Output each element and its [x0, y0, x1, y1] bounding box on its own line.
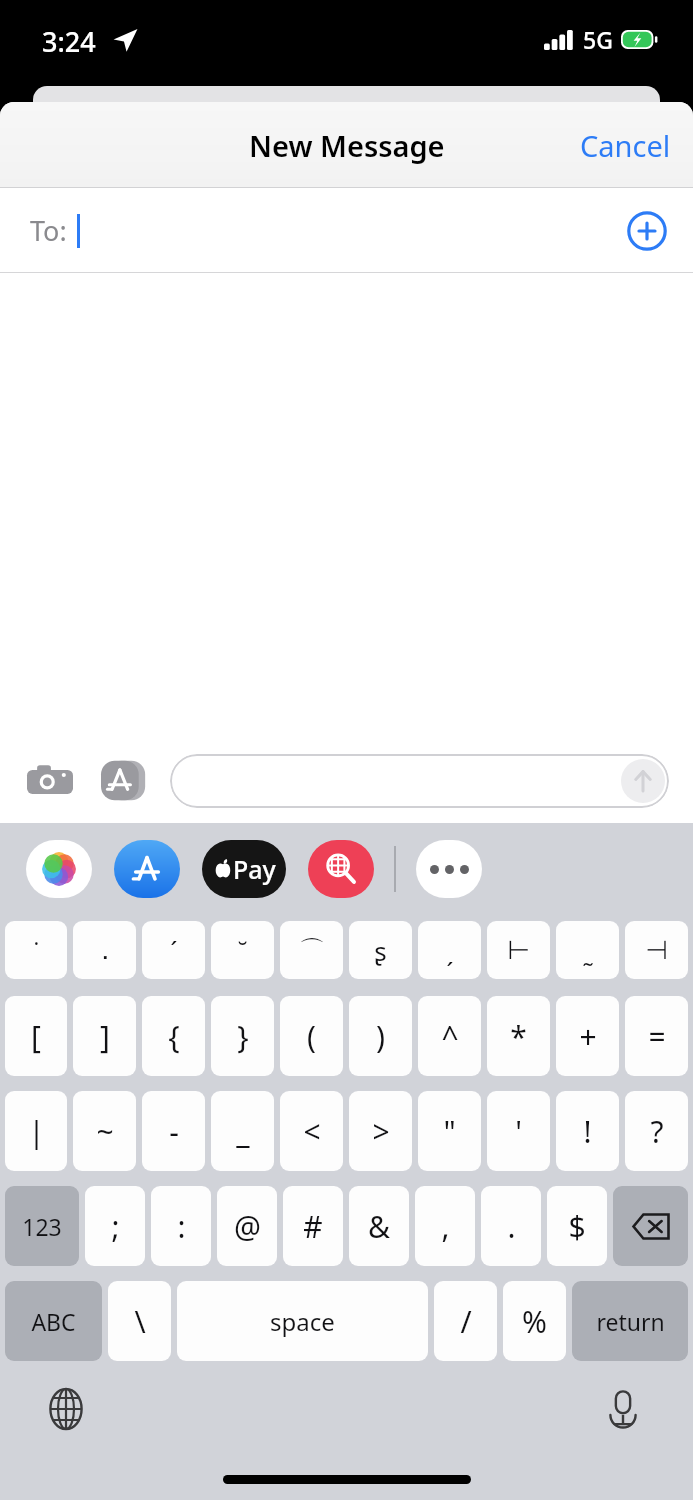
staticText: space [270, 1305, 335, 1338]
staticText: ABC [31, 1306, 76, 1337]
button[interactable]: [ [5, 996, 67, 1076]
button[interactable]: ; [85, 1186, 145, 1266]
button[interactable]: & [349, 1186, 409, 1266]
staticText: / [460, 1301, 472, 1342]
button[interactable]: Camera [24, 755, 76, 807]
button[interactable]: @ [217, 1186, 277, 1266]
staticText: ´ [170, 933, 178, 968]
button[interactable]: ' [487, 1091, 550, 1171]
staticText: ) [376, 1016, 385, 1057]
staticText: & [368, 1206, 390, 1247]
staticText: 5G [583, 24, 613, 55]
button[interactable]: ( [280, 996, 343, 1076]
staticText: \ [134, 1301, 146, 1342]
button[interactable]: Music search [308, 840, 374, 898]
button[interactable]: ． [73, 921, 136, 979]
button[interactable]: ⊣ [625, 921, 688, 979]
button[interactable]: = [625, 996, 688, 1076]
button[interactable]: $ [547, 1186, 607, 1266]
button[interactable]: Cancel [558, 116, 693, 175]
button[interactable]: . [481, 1186, 541, 1266]
staticText: ⊢ [507, 935, 530, 965]
button[interactable]: Change keyboard [40, 1383, 92, 1435]
button[interactable]: " [418, 1091, 481, 1171]
button[interactable]: ⊢ [487, 921, 550, 979]
button[interactable]: > [349, 1091, 412, 1171]
button[interactable]: ˘ [211, 921, 274, 979]
staticText: + [579, 1016, 597, 1057]
button[interactable]: ] [73, 996, 136, 1076]
button[interactable]: \ [108, 1281, 171, 1361]
button[interactable]: % [503, 1281, 566, 1361]
button[interactable]: ABC [5, 1281, 102, 1361]
button[interactable]: ⌒ [280, 921, 343, 979]
staticText: { [168, 1016, 180, 1057]
staticText: ． [92, 934, 118, 967]
staticText: > [372, 1111, 390, 1152]
button[interactable]: } [211, 996, 274, 1076]
staticText: } [237, 1016, 249, 1057]
button[interactable]: | [5, 1091, 67, 1171]
staticText: ? [650, 1111, 664, 1152]
staticText: [ [31, 1016, 41, 1057]
staticText: : [177, 1206, 186, 1247]
staticText: ˙ [34, 933, 39, 968]
button[interactable]: ˏ [418, 921, 481, 979]
staticText: ⊣ [645, 935, 668, 965]
staticText: * [510, 1016, 527, 1057]
button[interactable]: + [556, 996, 619, 1076]
staticText: ⌒ [299, 934, 325, 967]
staticText: ʂ [374, 933, 387, 968]
button[interactable]: More apps [416, 840, 482, 898]
staticText: Cancel [580, 126, 671, 165]
button[interactable]: : [151, 1186, 211, 1266]
button[interactable]: ~ [73, 1091, 136, 1171]
button[interactable]: ´ [142, 921, 205, 979]
staticText: - [169, 1111, 179, 1152]
button[interactable]: Apple Pay [202, 840, 286, 898]
staticText: $ [568, 1206, 586, 1247]
button[interactable]: < [280, 1091, 343, 1171]
button[interactable]: ʂ [349, 921, 412, 979]
button[interactable]: , [415, 1186, 475, 1266]
button[interactable]: Add contact [623, 207, 671, 255]
button[interactable]: ˙ [5, 921, 67, 979]
button[interactable]: App Store apps [98, 755, 150, 807]
staticText: < [303, 1111, 321, 1152]
button[interactable]: return [572, 1281, 688, 1361]
staticText: # [303, 1206, 323, 1247]
staticText: ˷ [582, 933, 594, 968]
staticText: To: [30, 212, 67, 249]
other: Send [621, 759, 665, 803]
button[interactable]: Photos [26, 840, 92, 898]
staticText: % [522, 1301, 547, 1342]
staticText: _ [236, 1111, 250, 1152]
button[interactable]: ) [349, 996, 412, 1076]
button[interactable]: # [283, 1186, 343, 1266]
button[interactable]: Send [170, 754, 669, 808]
button[interactable]: Dictation [597, 1383, 649, 1435]
button[interactable]: _ [211, 1091, 274, 1171]
button[interactable]: space [177, 1281, 428, 1361]
staticText: " [443, 1111, 456, 1152]
staticText: . [507, 1206, 516, 1247]
staticText: 3:24 [42, 23, 96, 60]
staticText: , [441, 1206, 450, 1247]
button[interactable]: App Store [114, 840, 180, 898]
button[interactable]: / [434, 1281, 497, 1361]
button[interactable]: ^ [418, 996, 481, 1076]
staticText: Pay [233, 852, 276, 886]
staticText: ] [100, 1016, 110, 1057]
button[interactable]: * [487, 996, 550, 1076]
button[interactable]: { [142, 996, 205, 1076]
staticText: | [28, 1111, 45, 1152]
staticText: 123 [22, 1211, 62, 1242]
button[interactable]: - [142, 1091, 205, 1171]
staticText: ~ [96, 1111, 114, 1152]
button[interactable]: ? [625, 1091, 688, 1171]
button[interactable]: 123 [5, 1186, 79, 1266]
button[interactable]: ! [556, 1091, 619, 1171]
button[interactable]: Delete [613, 1186, 688, 1266]
staticText: @ [234, 1206, 261, 1247]
button[interactable]: ˷ [556, 921, 619, 979]
